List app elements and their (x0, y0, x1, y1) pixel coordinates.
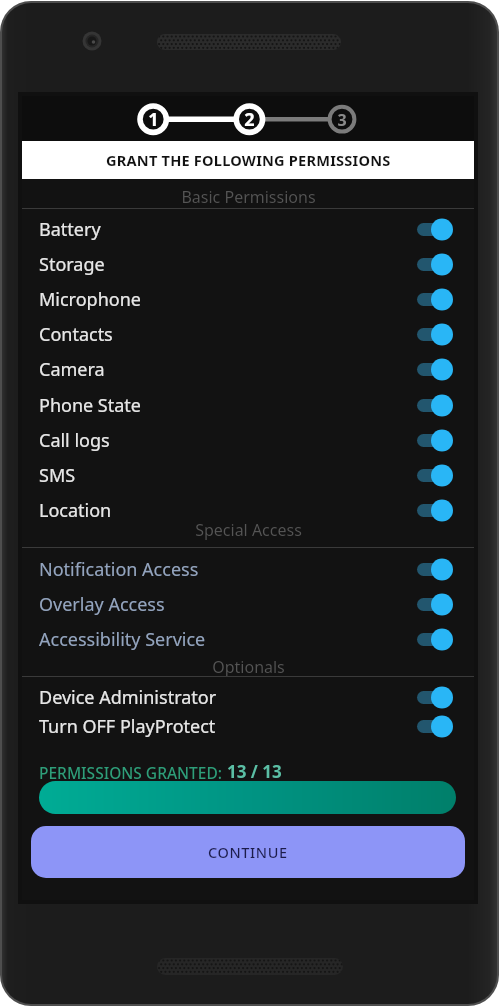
button[interactable]: Overlay Access (22, 587, 474, 622)
button[interactable]: Toggle permission (417, 218, 453, 241)
staticText: 2 (244, 107, 255, 132)
staticText: Special Access (195, 519, 302, 541)
button[interactable]: Toggle permission (417, 358, 453, 381)
button[interactable]: Toggle permission (417, 288, 453, 311)
button[interactable]: Contacts (22, 317, 474, 352)
staticText: Accessibility Service (39, 627, 206, 652)
button[interactable]: GRANT THE FOLLOWING PERMISSIONS (22, 141, 474, 179)
button[interactable]: Device Administrator (22, 680, 474, 715)
staticText: Microphone (39, 287, 141, 312)
staticText: Phone State (39, 393, 141, 418)
button[interactable]: Toggle permission (417, 558, 453, 581)
button[interactable]: Toggle permission (417, 499, 453, 522)
button[interactable]: Toggle permission (417, 323, 453, 346)
button[interactable]: Storage (22, 247, 474, 282)
button[interactable]: Call logs (22, 423, 474, 458)
button[interactable]: Toggle permission (417, 715, 453, 738)
button[interactable]: Toggle permission (417, 464, 453, 487)
button[interactable]: Accessibility Service (22, 622, 474, 657)
button[interactable]: Toggle permission (417, 394, 453, 417)
staticText: Camera (39, 357, 105, 382)
staticText: GRANT THE FOLLOWING PERMISSIONS (106, 150, 391, 170)
staticText: Device Administrator (39, 685, 217, 710)
staticText: Overlay Access (39, 592, 165, 617)
staticText: 1 (148, 107, 159, 132)
button[interactable]: Turn OFF PlayProtect (22, 709, 474, 744)
staticText: 3 (337, 109, 347, 131)
button[interactable]: SMS (22, 458, 474, 493)
staticText: PERMISSIONS GRANTED: (39, 762, 227, 783)
staticText: Contacts (39, 322, 113, 347)
button[interactable]: Microphone (22, 282, 474, 317)
staticText: Call logs (39, 428, 110, 453)
button[interactable]: Toggle permission (417, 253, 453, 276)
button[interactable]: Notification Access (22, 552, 474, 587)
button[interactable]: Location (22, 493, 474, 528)
staticText: 13 / 13 (227, 760, 282, 783)
staticText: Location (39, 498, 112, 523)
button[interactable]: Toggle permission (417, 593, 453, 616)
staticText: Battery (39, 217, 101, 242)
button[interactable]: Toggle permission (417, 628, 453, 651)
button[interactable]: CONTINUE (31, 826, 465, 878)
button[interactable]: Battery (22, 212, 474, 247)
staticText: SMS (39, 463, 76, 488)
staticText: Turn OFF PlayProtect (39, 714, 216, 739)
button[interactable]: Toggle permission (417, 686, 453, 709)
staticText: Storage (39, 252, 105, 277)
staticText: Optionals (212, 656, 285, 678)
button[interactable]: Camera (22, 352, 474, 387)
button[interactable]: Phone State (22, 388, 474, 423)
button[interactable]: Toggle permission (417, 429, 453, 452)
staticText: CONTINUE (208, 842, 288, 862)
staticText: Basic Permissions (181, 186, 316, 208)
staticText: Notification Access (39, 557, 199, 582)
